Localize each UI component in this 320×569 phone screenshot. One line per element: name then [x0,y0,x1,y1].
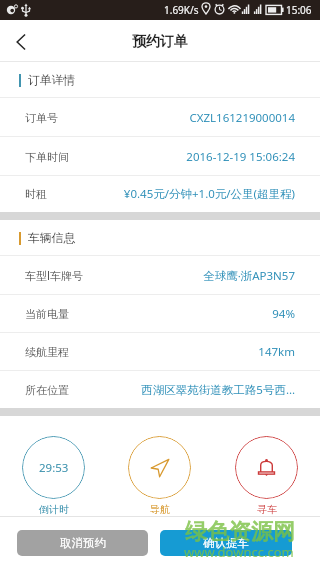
button[interactable]: 订单号 [0,98,320,137]
staticText: 29:53 [39,460,69,476]
staticText: 订单号 [25,111,58,125]
staticText: 1.69K/s [164,3,199,17]
button[interactable]: Back [0,21,41,62]
staticText: 西湖区翠苑街道教工路5号西… [141,382,295,398]
button[interactable]: 续航里程 [0,333,320,371]
button[interactable]: 取消预约 [17,530,148,556]
staticText: 绿色资源网 [185,518,295,546]
staticText: 全球鹰·浙AP3N57 [203,268,295,284]
staticText: 倒计时 [39,503,69,516]
staticText: 续航里程 [25,345,69,359]
button[interactable]: 导航 [128,436,191,516]
staticText: www.downcc.com [184,543,294,561]
staticText: 导航 [150,503,170,516]
staticText: 2016-12-19 15:06:24 [186,149,295,165]
staticText: 当前电量 [25,307,69,321]
button[interactable]: 当前电量 [0,295,320,333]
staticText: 时租 [25,187,47,201]
staticText: 94% [272,306,295,322]
staticText: 车辆信息 [28,231,76,246]
staticText: 所在位置 [25,383,69,397]
staticText: 车型 [25,269,47,283]
staticText: 车牌号 [50,269,83,283]
button[interactable]: 时租 [0,176,320,212]
button[interactable]: 下单时间 [0,137,320,176]
staticText: 下单时间 [25,150,69,164]
staticText: 147km [258,344,295,360]
staticText: 订单详情 [28,73,76,88]
button[interactable]: 所在位置 [0,371,320,408]
staticText: 寻车 [257,503,277,516]
button[interactable]: 确认提车 [160,530,292,556]
staticText: CXZL161219000014 [189,110,295,126]
staticText: 15:06 [286,3,312,17]
staticText: ¥0.45元/分钟+1.0元/公里(超里程) [123,186,295,202]
staticText: 预约订单 [132,33,188,51]
button[interactable]: 寻车 [235,436,298,516]
button[interactable]: 车型 [0,256,320,295]
button[interactable]: 29:53 [22,436,85,516]
staticText: 确认提车 [203,536,249,550]
staticText: 取消预约 [60,536,106,550]
